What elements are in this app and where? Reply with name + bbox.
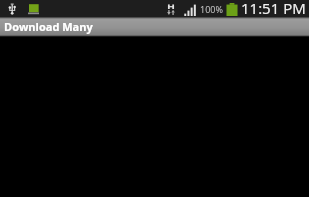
staticText: Download Many — [4, 19, 93, 34]
staticText: 100% — [200, 3, 223, 15]
other: Download in progress — [28, 4, 39, 14]
other: USB connected — [7, 3, 17, 15]
other: Battery full — [226, 3, 238, 16]
other: HSPA data connection — [167, 3, 175, 15]
other: Signal strength — [184, 4, 197, 16]
staticText: 11:51 PM — [241, 0, 306, 15]
button[interactable]: Download Many — [0, 17, 309, 37]
